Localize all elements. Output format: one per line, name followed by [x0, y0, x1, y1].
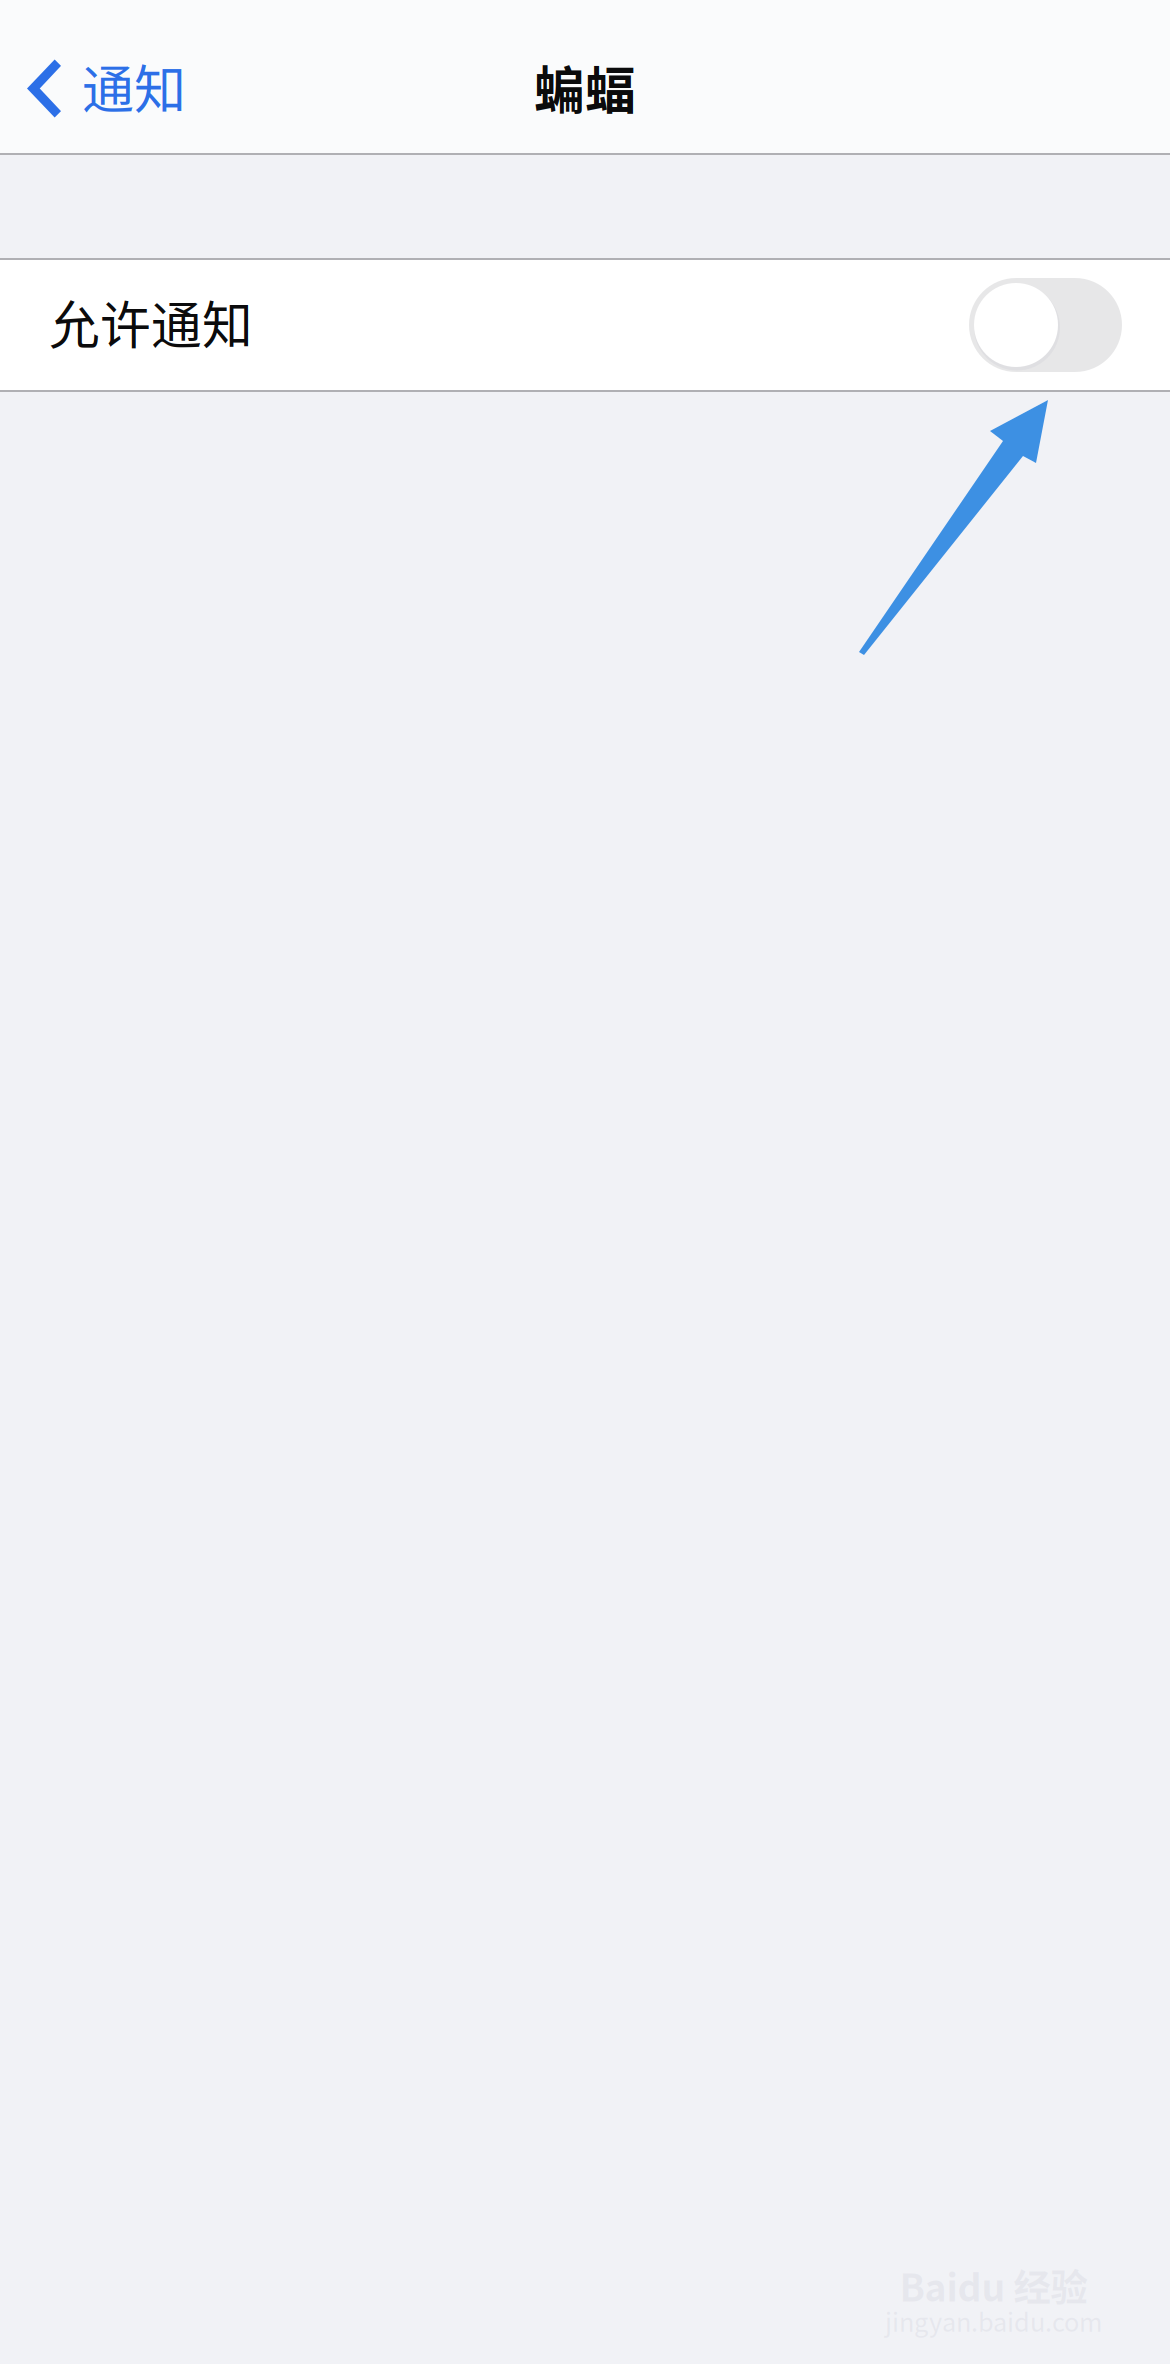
- button[interactable]: 返回 通知: [0, 26, 206, 146]
- button[interactable]: 允许通知: [0, 260, 1170, 390]
- staticText: 通知: [82, 48, 186, 124]
- staticText: 蝙蝠: [534, 50, 636, 124]
- staticText: jingyan.baidu.com: [885, 2302, 1102, 2339]
- staticText: 允许通知: [49, 285, 253, 359]
- staticText: Baidu 经验: [899, 2258, 1087, 2312]
